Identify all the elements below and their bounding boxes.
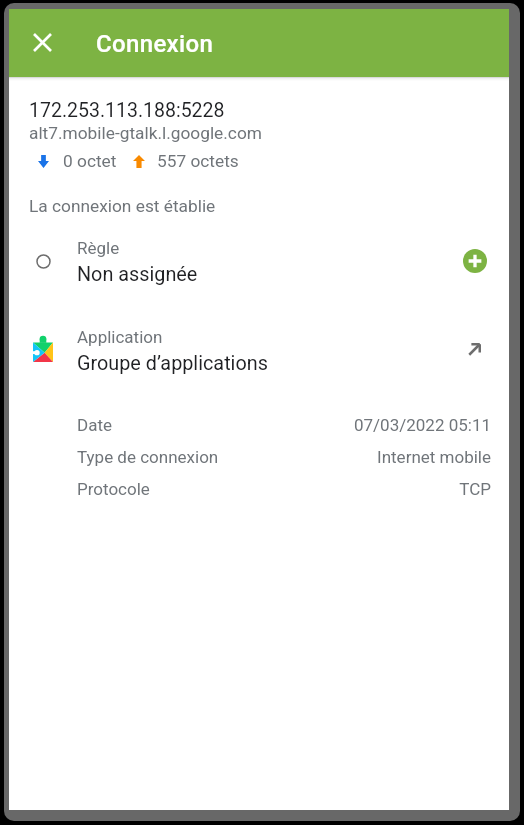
staticText: 557 octets [157,151,239,171]
staticText: Non assignée [77,263,198,286]
button[interactable]: Fermer [18,18,66,66]
staticText: Application [77,327,163,347]
button[interactable]: Ouvrir l'application [452,327,496,371]
staticText: Groupe d’applications [77,352,268,375]
staticText: Connexion [96,30,214,58]
button[interactable]: Règle [9,238,509,304]
button[interactable]: Ajouter une règle [453,239,497,283]
staticText: 07/03/2022 05:11 [353,415,491,435]
staticText: 172.253.113.188:5228 [29,99,225,122]
staticText: TCP [459,479,491,499]
staticText: Date [77,415,112,435]
staticText: 0 octet [63,151,117,171]
staticText: Protocole [77,479,150,499]
staticText: alt7.mobile-gtalk.l.google.com [29,123,262,143]
staticText: Internet mobile [377,447,491,467]
staticText: Type de connexion [77,447,219,467]
staticText: Règle [77,238,120,258]
staticText: La connexion est établie [29,196,216,216]
button[interactable]: Application [9,327,509,393]
